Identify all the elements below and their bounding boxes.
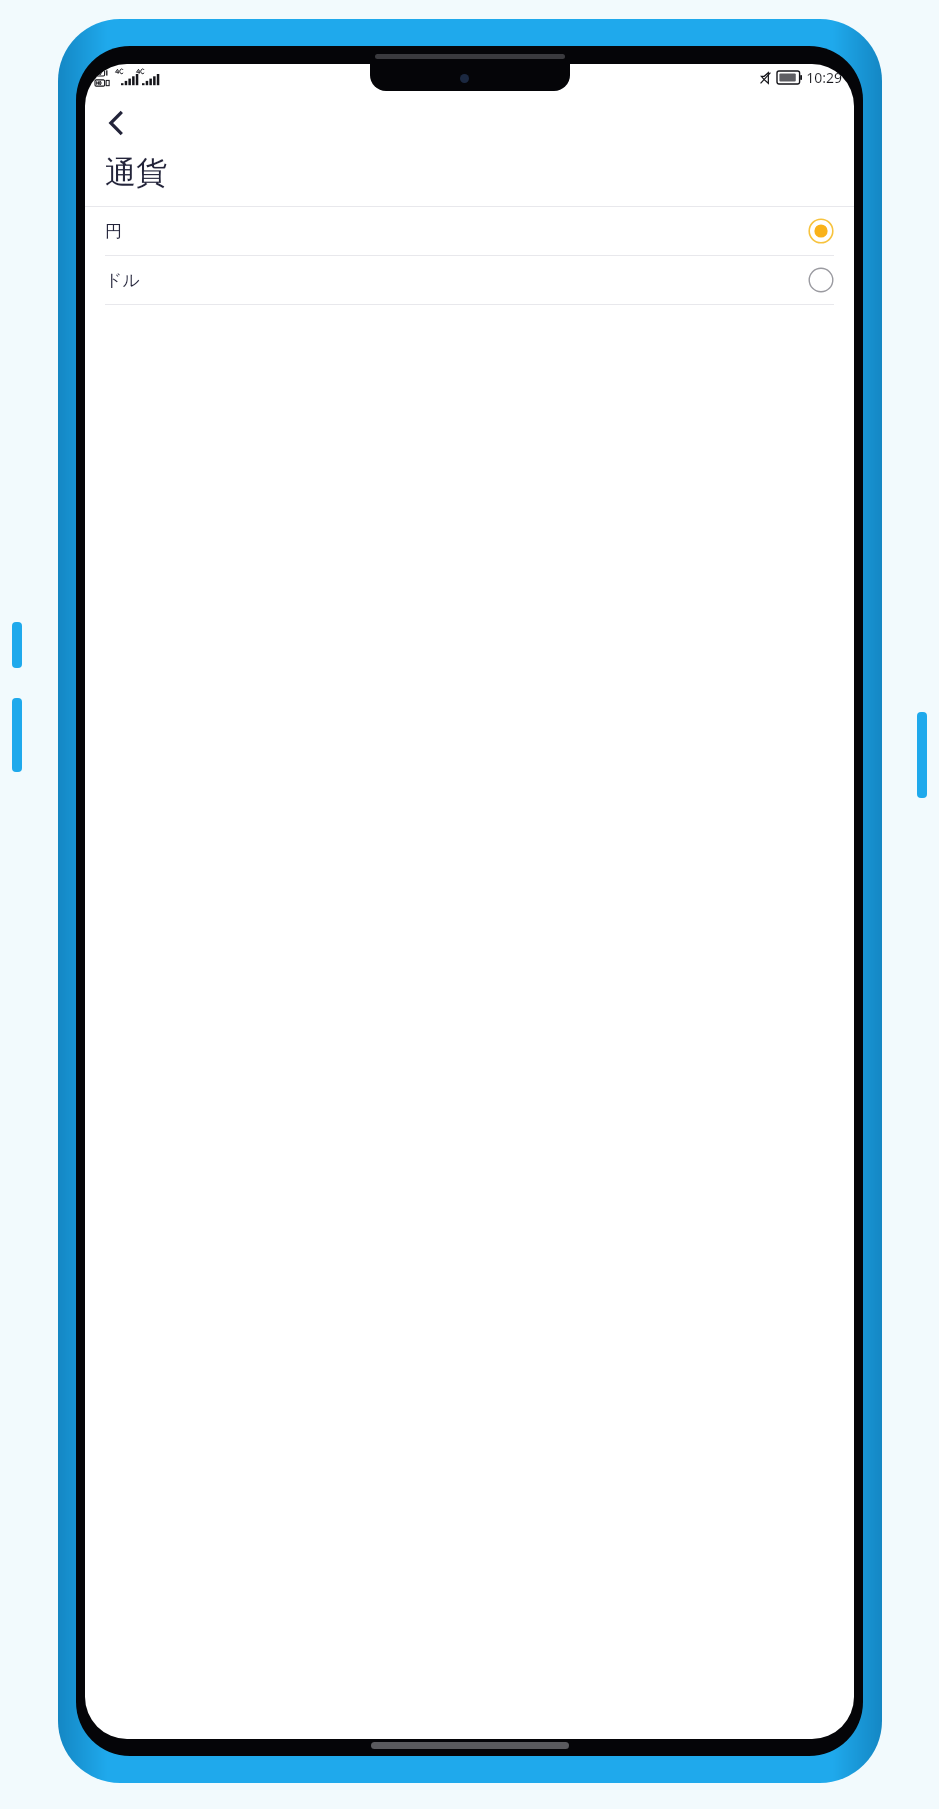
staticText: ドル	[105, 270, 808, 291]
button[interactable]: ドル	[85, 256, 854, 304]
button[interactable]: Back	[92, 99, 140, 147]
staticText: 円	[105, 221, 808, 242]
staticText: 通貨	[105, 153, 167, 192]
staticText: 10:29	[806, 68, 842, 87]
button[interactable]: 円	[85, 207, 854, 255]
